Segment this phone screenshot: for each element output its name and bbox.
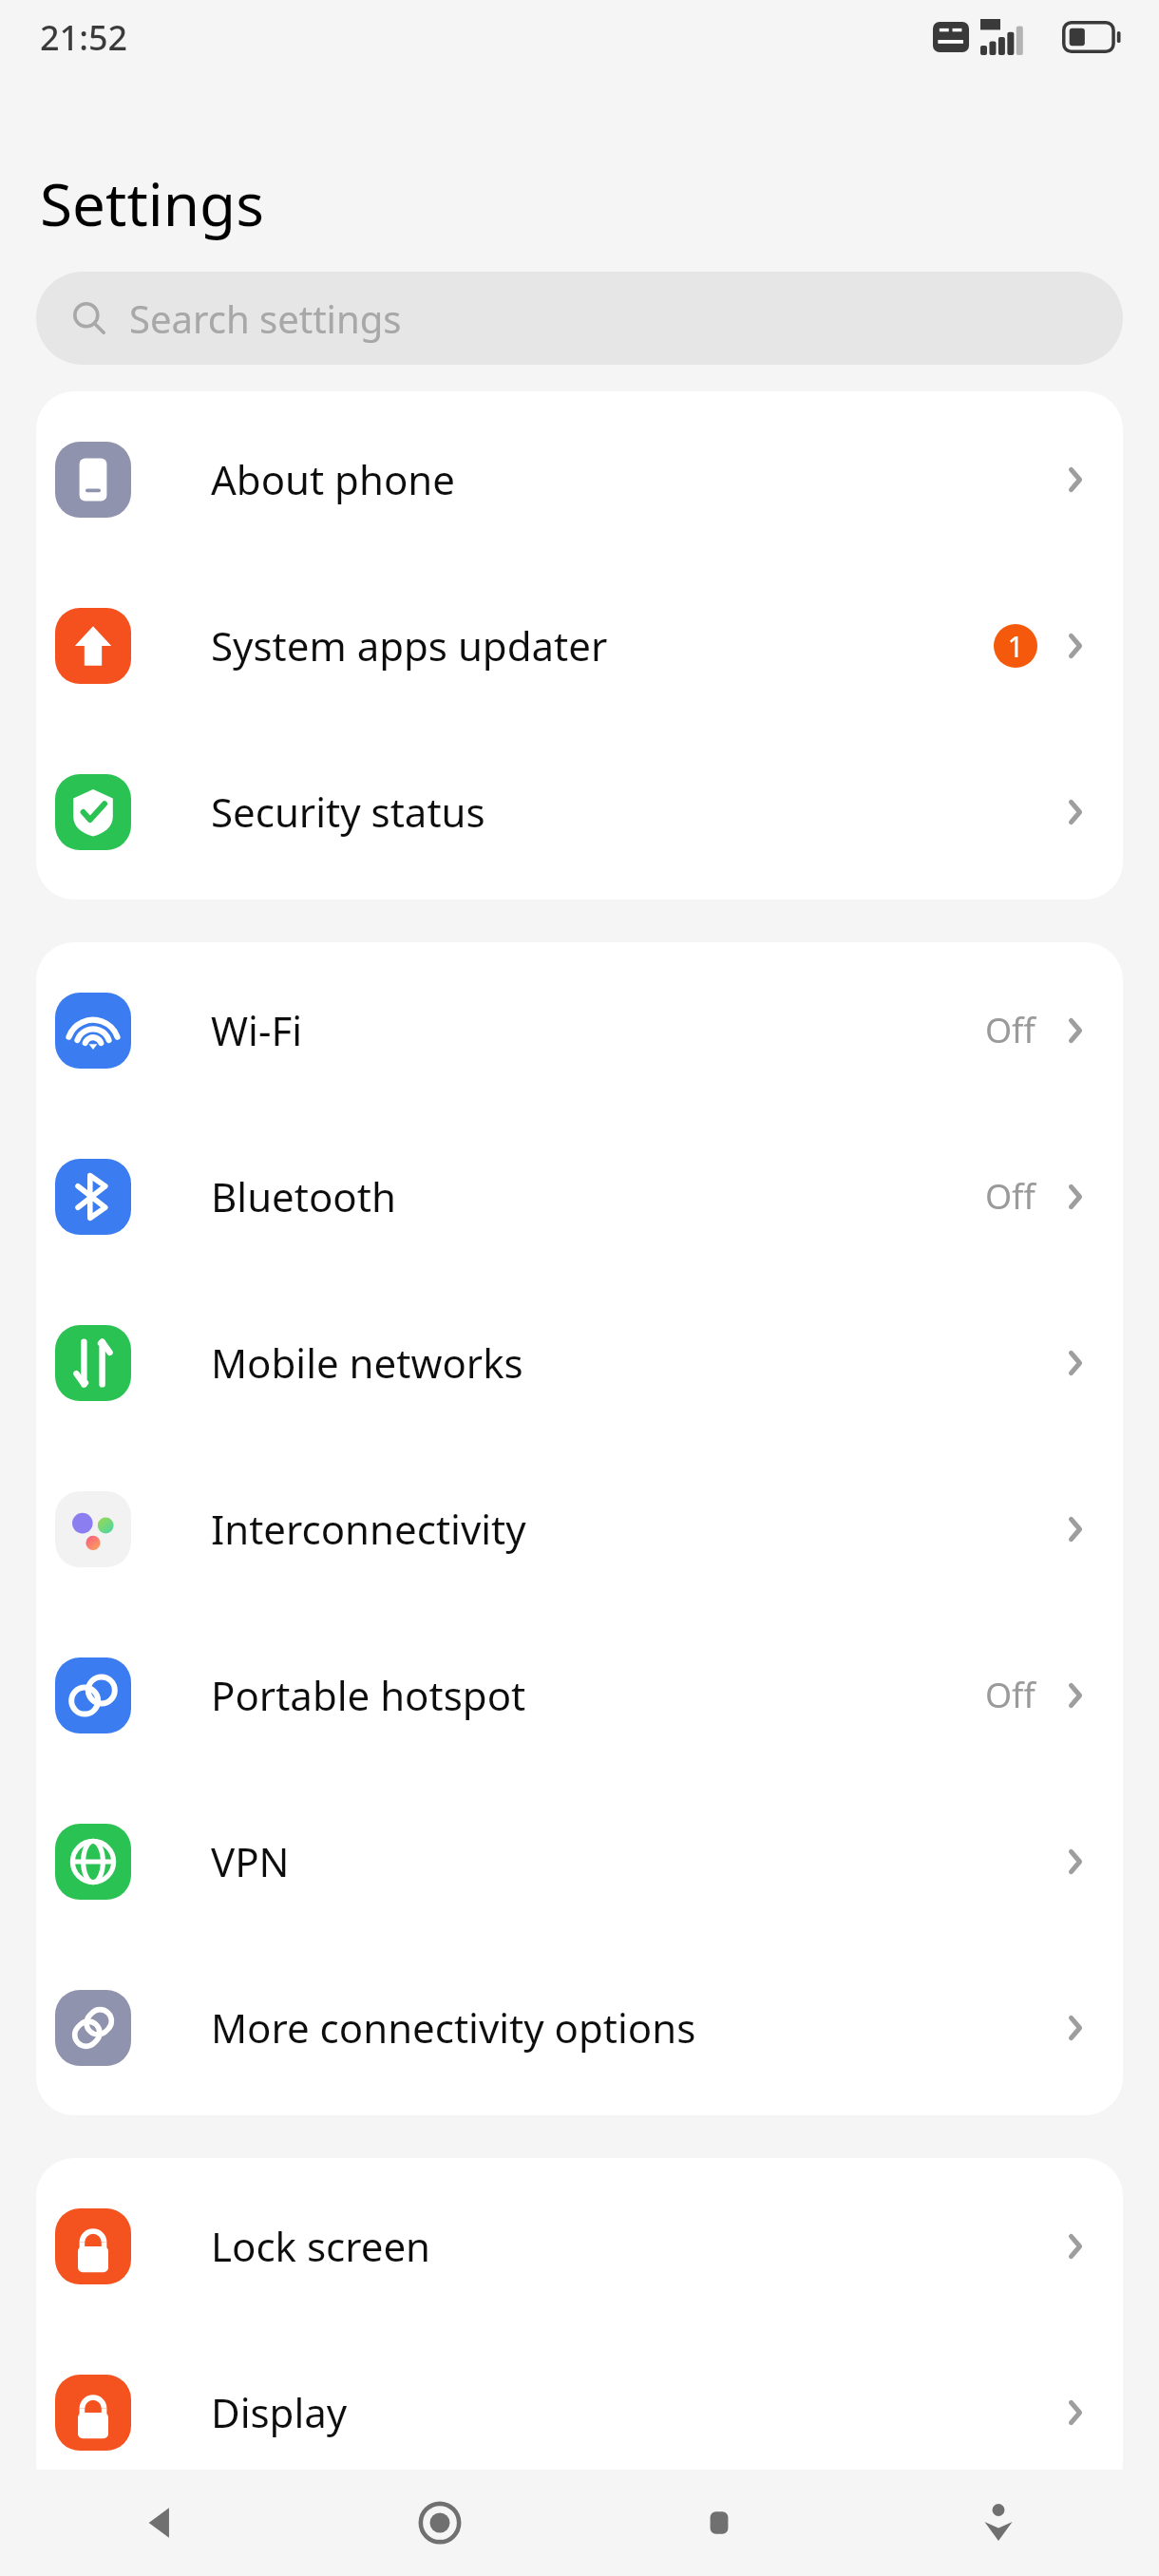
staticText: 1	[1007, 627, 1024, 666]
button[interactable]: System apps updater	[36, 562, 1123, 729]
button[interactable]: Home	[387, 2470, 493, 2576]
staticText: Settings	[40, 163, 264, 243]
button[interactable]: Interconnectivity	[36, 1446, 1123, 1612]
button[interactable]: Mobile networks	[36, 1279, 1123, 1446]
staticText: More connectivity options	[211, 2000, 1054, 2055]
button[interactable]: Lock screen	[36, 2163, 1123, 2329]
button[interactable]: Portable hotspot	[36, 1612, 1123, 1778]
staticText: Wi-Fi	[211, 1003, 985, 1057]
staticText: VPN	[211, 1834, 1054, 1888]
staticText: Search settings	[129, 293, 402, 344]
staticText: 21:52	[40, 14, 128, 61]
button[interactable]: Security status	[36, 729, 1123, 895]
staticText: Interconnectivity	[211, 1502, 1054, 1556]
staticText: Off	[985, 1672, 1035, 1718]
button[interactable]: Recents	[666, 2470, 772, 2576]
staticText: Portable hotspot	[211, 1668, 985, 1722]
button[interactable]: More connectivity options	[36, 1944, 1123, 2111]
staticText: Mobile networks	[211, 1335, 1054, 1390]
staticText: Bluetooth	[211, 1169, 985, 1223]
button[interactable]: Back	[107, 2470, 214, 2576]
button[interactable]: One-handed mode	[945, 2470, 1052, 2576]
staticText: Lock screen	[211, 2219, 1054, 2273]
staticText: Off	[985, 1173, 1035, 1220]
button[interactable]: About phone	[36, 396, 1123, 562]
staticText: About phone	[211, 452, 1054, 506]
button[interactable]: Search settings	[36, 272, 1123, 365]
button[interactable]: Display	[36, 2329, 1123, 2495]
staticText: Display	[211, 2385, 1054, 2439]
staticText: Security status	[211, 785, 1054, 839]
staticText: Off	[985, 1007, 1035, 1053]
staticText: System apps updater	[211, 618, 994, 672]
button[interactable]: Bluetooth	[36, 1113, 1123, 1279]
button[interactable]: Wi-Fi	[36, 947, 1123, 1113]
button[interactable]: VPN	[36, 1778, 1123, 1944]
